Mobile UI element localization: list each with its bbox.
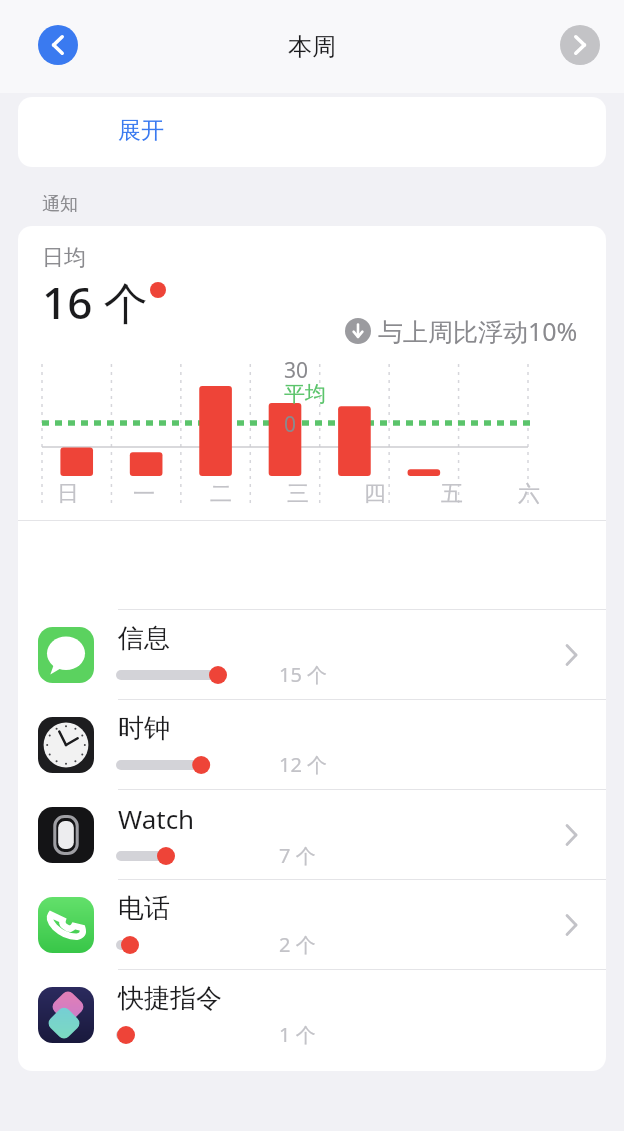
- staticText: 通知: [42, 193, 78, 216]
- staticText: 本周: [288, 32, 336, 62]
- staticText: 0: [284, 410, 297, 439]
- staticText: 16 个: [42, 272, 148, 332]
- staticText: 平均: [284, 381, 326, 407]
- button[interactable]: Watch: [18, 789, 606, 879]
- staticText: 7 个: [279, 842, 316, 869]
- staticText: 与上周比浮动10%: [378, 314, 578, 348]
- staticText: 日: [57, 480, 79, 508]
- button[interactable]: 电话: [18, 879, 606, 969]
- staticText: 12 个: [279, 751, 328, 778]
- staticText: 电话: [118, 892, 170, 925]
- staticText: Watch: [118, 801, 195, 836]
- staticText: 二: [210, 480, 232, 508]
- staticText: 快捷指令: [118, 982, 222, 1015]
- other: 详情: [556, 640, 586, 670]
- button[interactable]: 上一周: [38, 25, 78, 65]
- staticText: 三: [287, 480, 309, 508]
- staticText: 展开: [118, 116, 164, 145]
- staticText: 五: [441, 480, 463, 508]
- staticText: 六: [518, 480, 540, 508]
- staticText: 一: [133, 480, 155, 508]
- other: 详情: [556, 910, 586, 940]
- staticText: 信息: [118, 622, 170, 655]
- staticText: 四: [364, 480, 386, 508]
- other: 详情: [556, 820, 586, 850]
- button[interactable]: 快捷指令: [18, 969, 606, 1059]
- staticText: 15 个: [279, 661, 328, 688]
- staticText: 30: [284, 356, 309, 385]
- staticText: 日均: [42, 244, 86, 272]
- button[interactable]: 下一周: [560, 25, 600, 65]
- staticText: 时钟: [118, 712, 170, 745]
- button[interactable]: 展开: [18, 97, 606, 167]
- staticText: 2 个: [279, 931, 316, 958]
- staticText: 1 个: [279, 1021, 316, 1048]
- button[interactable]: 时钟: [18, 699, 606, 789]
- button[interactable]: 信息: [18, 609, 606, 699]
